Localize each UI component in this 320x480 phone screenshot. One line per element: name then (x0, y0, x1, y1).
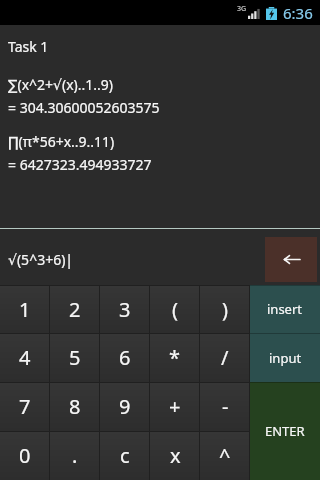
staticText: 3G (237, 4, 247, 14)
staticText: - (222, 393, 229, 420)
staticText: * (169, 344, 181, 371)
staticText: 6:36 (283, 3, 313, 23)
button[interactable]: 1 (0, 285, 50, 333)
button[interactable]: 7 (0, 382, 50, 431)
staticText: 4 (19, 344, 31, 371)
staticText: 7 (19, 393, 31, 420)
button[interactable]: 5 (50, 333, 100, 382)
button[interactable]: 6 (100, 333, 150, 382)
staticText: ( (172, 296, 178, 323)
staticText: + (169, 393, 181, 420)
staticText: ∏(π*56+x..9..11) (8, 132, 115, 151)
staticText: ) (222, 296, 228, 323)
staticText: . (72, 442, 78, 469)
staticText: / (221, 344, 229, 371)
button[interactable]: x (150, 431, 200, 480)
staticText: 8 (69, 393, 81, 420)
staticText: = 304.30600052603575 (8, 98, 160, 117)
staticText: 6 (119, 344, 131, 371)
staticText: = 6427323.494933727 (8, 155, 152, 174)
button[interactable]: + (150, 382, 200, 431)
staticText: 5 (69, 344, 81, 371)
button[interactable]: / (200, 333, 250, 382)
button[interactable]: 8 (50, 382, 100, 431)
staticText: insert (267, 300, 303, 318)
button[interactable]: Backspace (265, 237, 317, 282)
button[interactable]: ^ (200, 431, 250, 480)
staticText: Task 1 (8, 37, 49, 56)
staticText: 2 (69, 296, 81, 323)
staticText: ^ (219, 442, 231, 469)
button[interactable]: c (100, 431, 150, 480)
button[interactable]: * (150, 333, 200, 382)
staticText: √(5^3+6)| (8, 250, 74, 269)
button[interactable]: insert (250, 285, 320, 333)
staticText: 0 (19, 442, 31, 469)
button[interactable]: 3 (100, 285, 150, 333)
button[interactable]: input (250, 333, 320, 382)
button[interactable]: ENTER (250, 382, 320, 480)
staticText: ENTER (265, 422, 305, 440)
staticText: input (269, 349, 302, 367)
staticText: x (170, 442, 181, 469)
button[interactable]: 2 (50, 285, 100, 333)
staticText: 9 (119, 393, 131, 420)
button[interactable]: 9 (100, 382, 150, 431)
staticText: c (120, 442, 130, 469)
button[interactable]: ) (200, 285, 250, 333)
staticText: ∑(x^2+√(x)..1..9) (8, 75, 114, 94)
button[interactable]: 0 (0, 431, 50, 480)
button[interactable]: . (50, 431, 100, 480)
button[interactable]: 4 (0, 333, 50, 382)
button[interactable]: ( (150, 285, 200, 333)
staticText: 3 (119, 296, 131, 323)
staticText: 1 (19, 296, 31, 323)
button[interactable]: - (200, 382, 250, 431)
